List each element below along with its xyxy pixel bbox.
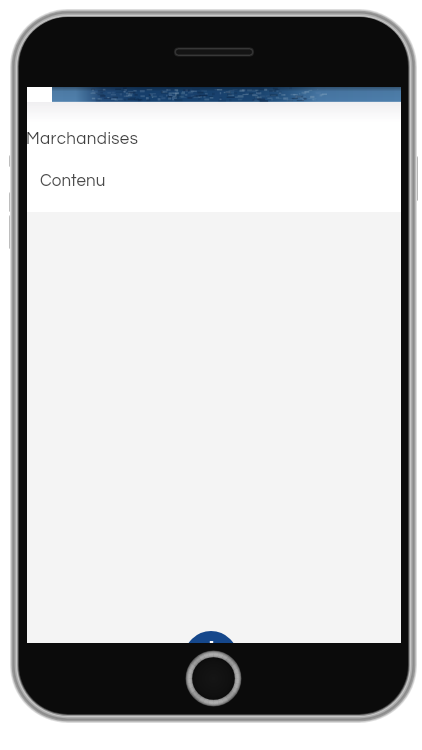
staticText: Contenu	[40, 172, 106, 190]
button[interactable]: Add	[184, 631, 238, 643]
staticText: Marchandises	[27, 130, 139, 148]
